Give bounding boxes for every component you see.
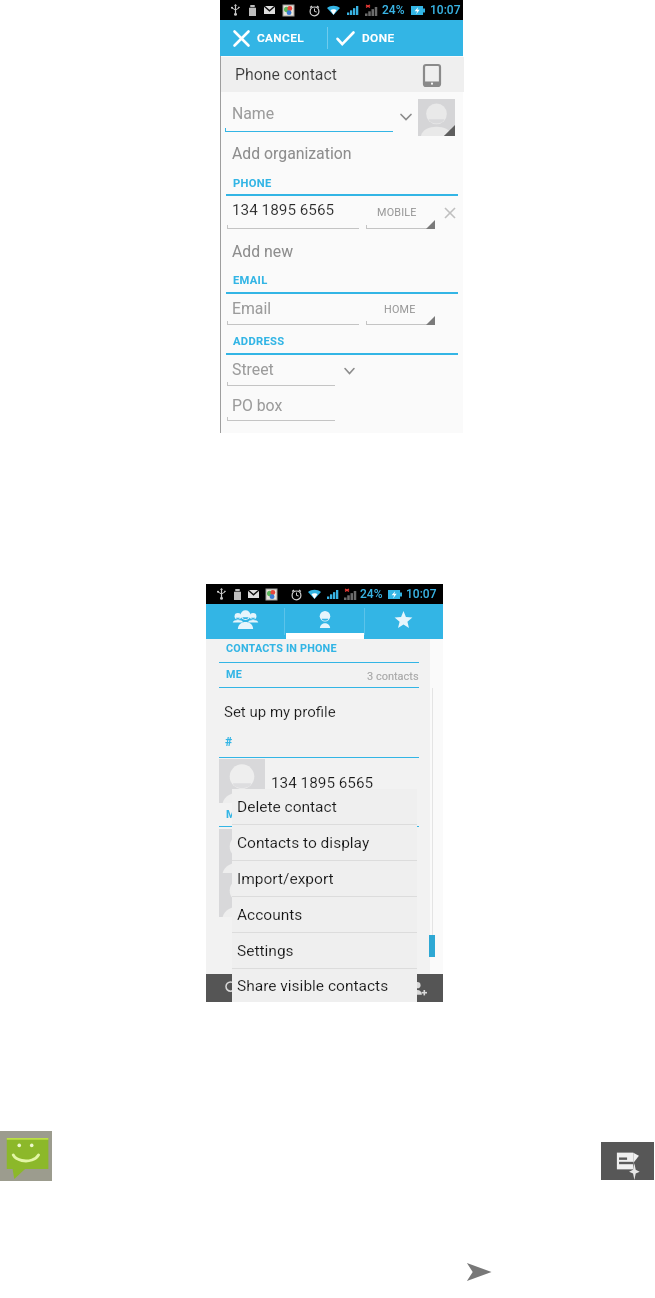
staticText: Add organization bbox=[232, 144, 352, 163]
staticText: HOME bbox=[384, 303, 416, 316]
button[interactable]: Delete contact bbox=[232, 789, 417, 825]
staticText: # bbox=[225, 735, 233, 749]
staticText: Name bbox=[232, 104, 275, 123]
staticText: Email bbox=[232, 299, 272, 318]
staticText: EMAIL bbox=[233, 274, 268, 287]
button[interactable]: Contacts to display bbox=[232, 825, 417, 861]
staticText: CANCEL bbox=[257, 31, 305, 45]
button[interactable] bbox=[221, 57, 464, 92]
button[interactable]: Set up my profile bbox=[224, 703, 336, 721]
button[interactable]: Groups bbox=[206, 604, 285, 639]
button[interactable]: Import/export bbox=[232, 861, 417, 897]
button[interactable]: Add contact bbox=[401, 974, 437, 1002]
button[interactable]: Add new bbox=[232, 242, 294, 261]
staticText: PHONE bbox=[233, 177, 272, 190]
staticText: ADDRESS bbox=[233, 335, 285, 348]
button[interactable]: Send bbox=[464, 1258, 493, 1286]
staticText: MOBILE bbox=[377, 206, 417, 219]
staticText: 10:07 bbox=[430, 3, 461, 17]
staticText: 24% bbox=[360, 587, 383, 601]
staticText: Import/export bbox=[237, 870, 334, 888]
button[interactable]: Remove phone bbox=[444, 207, 456, 219]
button[interactable]: DONE bbox=[336, 20, 426, 56]
button[interactable]: Search bbox=[214, 974, 250, 1002]
staticText: Delete contact bbox=[237, 798, 337, 816]
staticText: Add new bbox=[232, 242, 294, 261]
button[interactable]: Accounts bbox=[232, 897, 417, 933]
button[interactable]: Share visible contacts bbox=[232, 969, 417, 1002]
staticText: DONE bbox=[362, 31, 395, 45]
staticText: M bbox=[226, 808, 236, 821]
button[interactable]: CANCEL bbox=[233, 20, 328, 56]
staticText: Contacts to display bbox=[237, 834, 370, 852]
staticText: ME bbox=[226, 668, 242, 681]
staticText: Set up my profile bbox=[224, 703, 336, 721]
staticText: Street bbox=[232, 360, 274, 379]
staticText: 134 1895 6565 bbox=[232, 201, 335, 219]
staticText: 10:07 bbox=[406, 587, 437, 601]
button[interactable]: New message bbox=[601, 1142, 654, 1180]
button[interactable]: Messaging bbox=[0, 1131, 52, 1181]
button[interactable]: Favorites bbox=[364, 604, 443, 639]
staticText: Settings bbox=[237, 942, 294, 960]
staticText: 3 contacts bbox=[367, 670, 419, 683]
staticText: Michael bbox=[271, 887, 324, 905]
button[interactable]: Contacts bbox=[285, 604, 364, 639]
staticText: 24% bbox=[382, 3, 405, 17]
staticText: 134 1895 6565 bbox=[271, 774, 374, 792]
staticText: Phone contact bbox=[235, 65, 337, 84]
staticText: Share visible contacts bbox=[237, 977, 389, 995]
button[interactable]: Settings bbox=[232, 933, 417, 969]
staticText: Marks bbox=[271, 843, 313, 861]
staticText: Accounts bbox=[237, 906, 303, 924]
staticText: PO box bbox=[232, 396, 283, 415]
staticText: CONTACTS IN PHONE bbox=[226, 642, 337, 655]
